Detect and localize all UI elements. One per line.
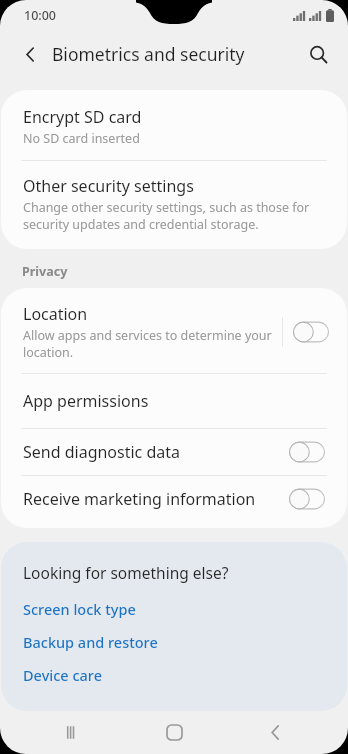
staticText: Allow apps and services to determine you… (23, 327, 274, 360)
staticText: App permissions (23, 390, 149, 412)
staticText: Backup and restore (23, 632, 158, 652)
button[interactable]: Back (10, 34, 50, 74)
button[interactable]: Toggle (289, 439, 325, 465)
button[interactable]: Search (298, 34, 338, 74)
button[interactable]: Toggle (289, 486, 325, 512)
staticText: Receive marketing information (23, 488, 256, 510)
staticText: Encrypt SD card (23, 106, 142, 128)
button[interactable]: Receive marketing information (1, 476, 347, 522)
button[interactable]: Location (1, 288, 347, 373)
button[interactable]: Toggle (293, 319, 329, 345)
staticText: Location (23, 303, 88, 325)
staticText: Device care (23, 665, 102, 685)
staticText: Send diagnostic data (23, 441, 181, 463)
button[interactable]: Send diagnostic data (1, 429, 347, 475)
button[interactable]: Recent apps (45, 711, 101, 754)
button[interactable]: Home (146, 711, 202, 754)
staticText: No SD card inserted (23, 130, 140, 147)
staticText: Biometrics and security (52, 42, 245, 66)
button[interactable]: Device care (1, 663, 347, 687)
button[interactable]: Other security settings (1, 161, 347, 249)
staticText: Change other security settings, such as … (23, 199, 325, 232)
button[interactable]: Backup and restore (1, 630, 347, 654)
staticText: Looking for something else? (23, 562, 229, 583)
button[interactable]: Encrypt SD card (1, 90, 347, 160)
staticText: Other security settings (23, 175, 194, 197)
button[interactable]: Back (247, 711, 303, 754)
staticText: Screen lock type (23, 599, 136, 619)
button[interactable]: Screen lock type (1, 597, 347, 621)
button[interactable]: App permissions (1, 374, 347, 428)
staticText: 10:00 (24, 7, 57, 24)
staticText: Privacy (22, 263, 68, 280)
